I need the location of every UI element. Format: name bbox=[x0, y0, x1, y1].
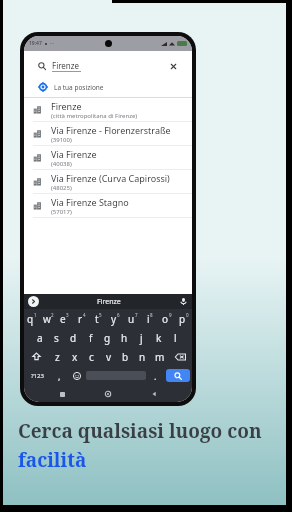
staticText: a bbox=[37, 331, 43, 345]
staticText: 8 bbox=[150, 312, 153, 318]
staticText: v bbox=[106, 350, 112, 364]
staticText: c bbox=[89, 350, 94, 364]
staticText: 3 bbox=[66, 312, 69, 318]
staticText: p bbox=[179, 312, 186, 326]
staticText: (40038) bbox=[51, 160, 72, 168]
staticText: i bbox=[147, 312, 150, 326]
button[interactable]: m bbox=[151, 347, 168, 366]
staticText: (39100) bbox=[51, 136, 72, 144]
button[interactable]: u bbox=[124, 309, 141, 328]
button[interactable]: s bbox=[48, 328, 65, 347]
button[interactable]: o bbox=[158, 309, 175, 328]
staticText: f bbox=[89, 331, 93, 345]
button[interactable]: Firenze bbox=[24, 98, 192, 121]
button[interactable]: v bbox=[100, 347, 117, 366]
button[interactable]: Via Firenze bbox=[24, 146, 192, 169]
button[interactable]: Home bbox=[100, 386, 116, 402]
staticText: d bbox=[70, 331, 77, 345]
button[interactable]: b bbox=[117, 347, 134, 366]
button[interactable]: Recents bbox=[54, 386, 70, 402]
staticText: n bbox=[139, 350, 146, 364]
button[interactable]: Clear bbox=[169, 62, 178, 71]
button[interactable]: Back bbox=[146, 386, 162, 402]
staticText: q bbox=[27, 312, 34, 326]
button[interactable]: Via Firenze - Florenzerstraße bbox=[24, 122, 192, 145]
staticText: b bbox=[122, 350, 129, 364]
staticText: ?123 bbox=[31, 372, 44, 380]
button[interactable]: p bbox=[175, 309, 192, 328]
staticText: y bbox=[111, 312, 117, 326]
button[interactable]: l bbox=[167, 328, 184, 347]
staticText: 7 bbox=[135, 312, 138, 318]
staticText: x bbox=[72, 350, 78, 364]
button[interactable]: j bbox=[133, 328, 150, 347]
button[interactable]: d bbox=[65, 328, 82, 347]
button[interactable]: w bbox=[40, 309, 56, 328]
button[interactable]: La tua posizione bbox=[24, 79, 192, 95]
button[interactable]: Search bbox=[31, 56, 185, 76]
staticText: 19:47 bbox=[29, 40, 42, 47]
button[interactable]: k bbox=[150, 328, 167, 347]
button[interactable]: a bbox=[31, 328, 48, 347]
button[interactable]: q bbox=[24, 309, 40, 328]
button[interactable]: . bbox=[146, 366, 164, 385]
staticText: 9 bbox=[169, 312, 172, 318]
staticText: s bbox=[54, 331, 59, 345]
button[interactable]: c bbox=[83, 347, 100, 366]
staticText: Via Firenze bbox=[51, 148, 97, 160]
button[interactable]: f bbox=[82, 328, 99, 347]
staticText: j bbox=[140, 331, 143, 345]
staticText: (57017) bbox=[51, 208, 72, 216]
button[interactable]: Backspace bbox=[168, 347, 192, 366]
staticText: Via Firenze Stagno bbox=[51, 196, 129, 208]
staticText: Via Firenze (Curva Capirossi) bbox=[51, 172, 170, 184]
staticText: w bbox=[43, 312, 51, 326]
staticText: Firenze bbox=[52, 60, 80, 71]
staticText: (48025) bbox=[51, 184, 72, 192]
staticText: 4 bbox=[83, 312, 86, 318]
other: La tua posizione bbox=[38, 82, 48, 92]
staticText: 6 bbox=[117, 312, 120, 318]
button[interactable]: i bbox=[141, 309, 158, 328]
staticText: g bbox=[104, 331, 111, 345]
staticText: 1 bbox=[34, 312, 37, 318]
staticText: (città metropolitana di Firenze) bbox=[51, 112, 138, 120]
button[interactable]: g bbox=[99, 328, 116, 347]
button[interactable]: , bbox=[50, 366, 68, 385]
button[interactable]: x bbox=[66, 347, 83, 366]
staticText: ··· bbox=[50, 40, 55, 47]
button[interactable]: Expand bbox=[28, 296, 39, 307]
button[interactable]: n bbox=[134, 347, 151, 366]
staticText: t bbox=[95, 312, 99, 326]
staticText: o bbox=[162, 312, 169, 326]
button[interactable]: Shift bbox=[24, 347, 49, 366]
button[interactable]: Emoji bbox=[68, 366, 86, 385]
staticText: Cerca qualsiasi luogo con bbox=[18, 418, 262, 444]
staticText: Firenze bbox=[51, 100, 82, 112]
staticText: Via Firenze - Florenzerstraße bbox=[51, 124, 171, 136]
staticText: facilità bbox=[18, 447, 87, 473]
button[interactable]: Voice input bbox=[179, 297, 188, 306]
staticText: 2 bbox=[51, 312, 54, 318]
button[interactable]: h bbox=[116, 328, 133, 347]
staticText: e bbox=[60, 312, 66, 326]
button[interactable]: z bbox=[49, 347, 66, 366]
staticText: z bbox=[55, 350, 60, 364]
button[interactable]: Via Firenze Stagno bbox=[24, 194, 192, 217]
button[interactable]: ?123 bbox=[24, 366, 50, 385]
staticText: La tua posizione bbox=[54, 83, 104, 92]
staticText: h bbox=[121, 331, 128, 345]
button[interactable]: Via Firenze (Curva Capirossi) bbox=[24, 170, 192, 193]
staticText: u bbox=[128, 312, 135, 326]
staticText: , bbox=[58, 370, 61, 382]
button[interactable]: r bbox=[73, 309, 90, 328]
button[interactable]: y bbox=[107, 309, 124, 328]
staticText: 0 bbox=[186, 312, 189, 318]
staticText: k bbox=[156, 331, 162, 345]
other: Search bbox=[38, 62, 46, 70]
staticText: . bbox=[154, 370, 157, 382]
button[interactable]: e bbox=[56, 309, 73, 328]
button[interactable]: t bbox=[90, 309, 107, 328]
button[interactable]: Search bbox=[166, 369, 190, 382]
